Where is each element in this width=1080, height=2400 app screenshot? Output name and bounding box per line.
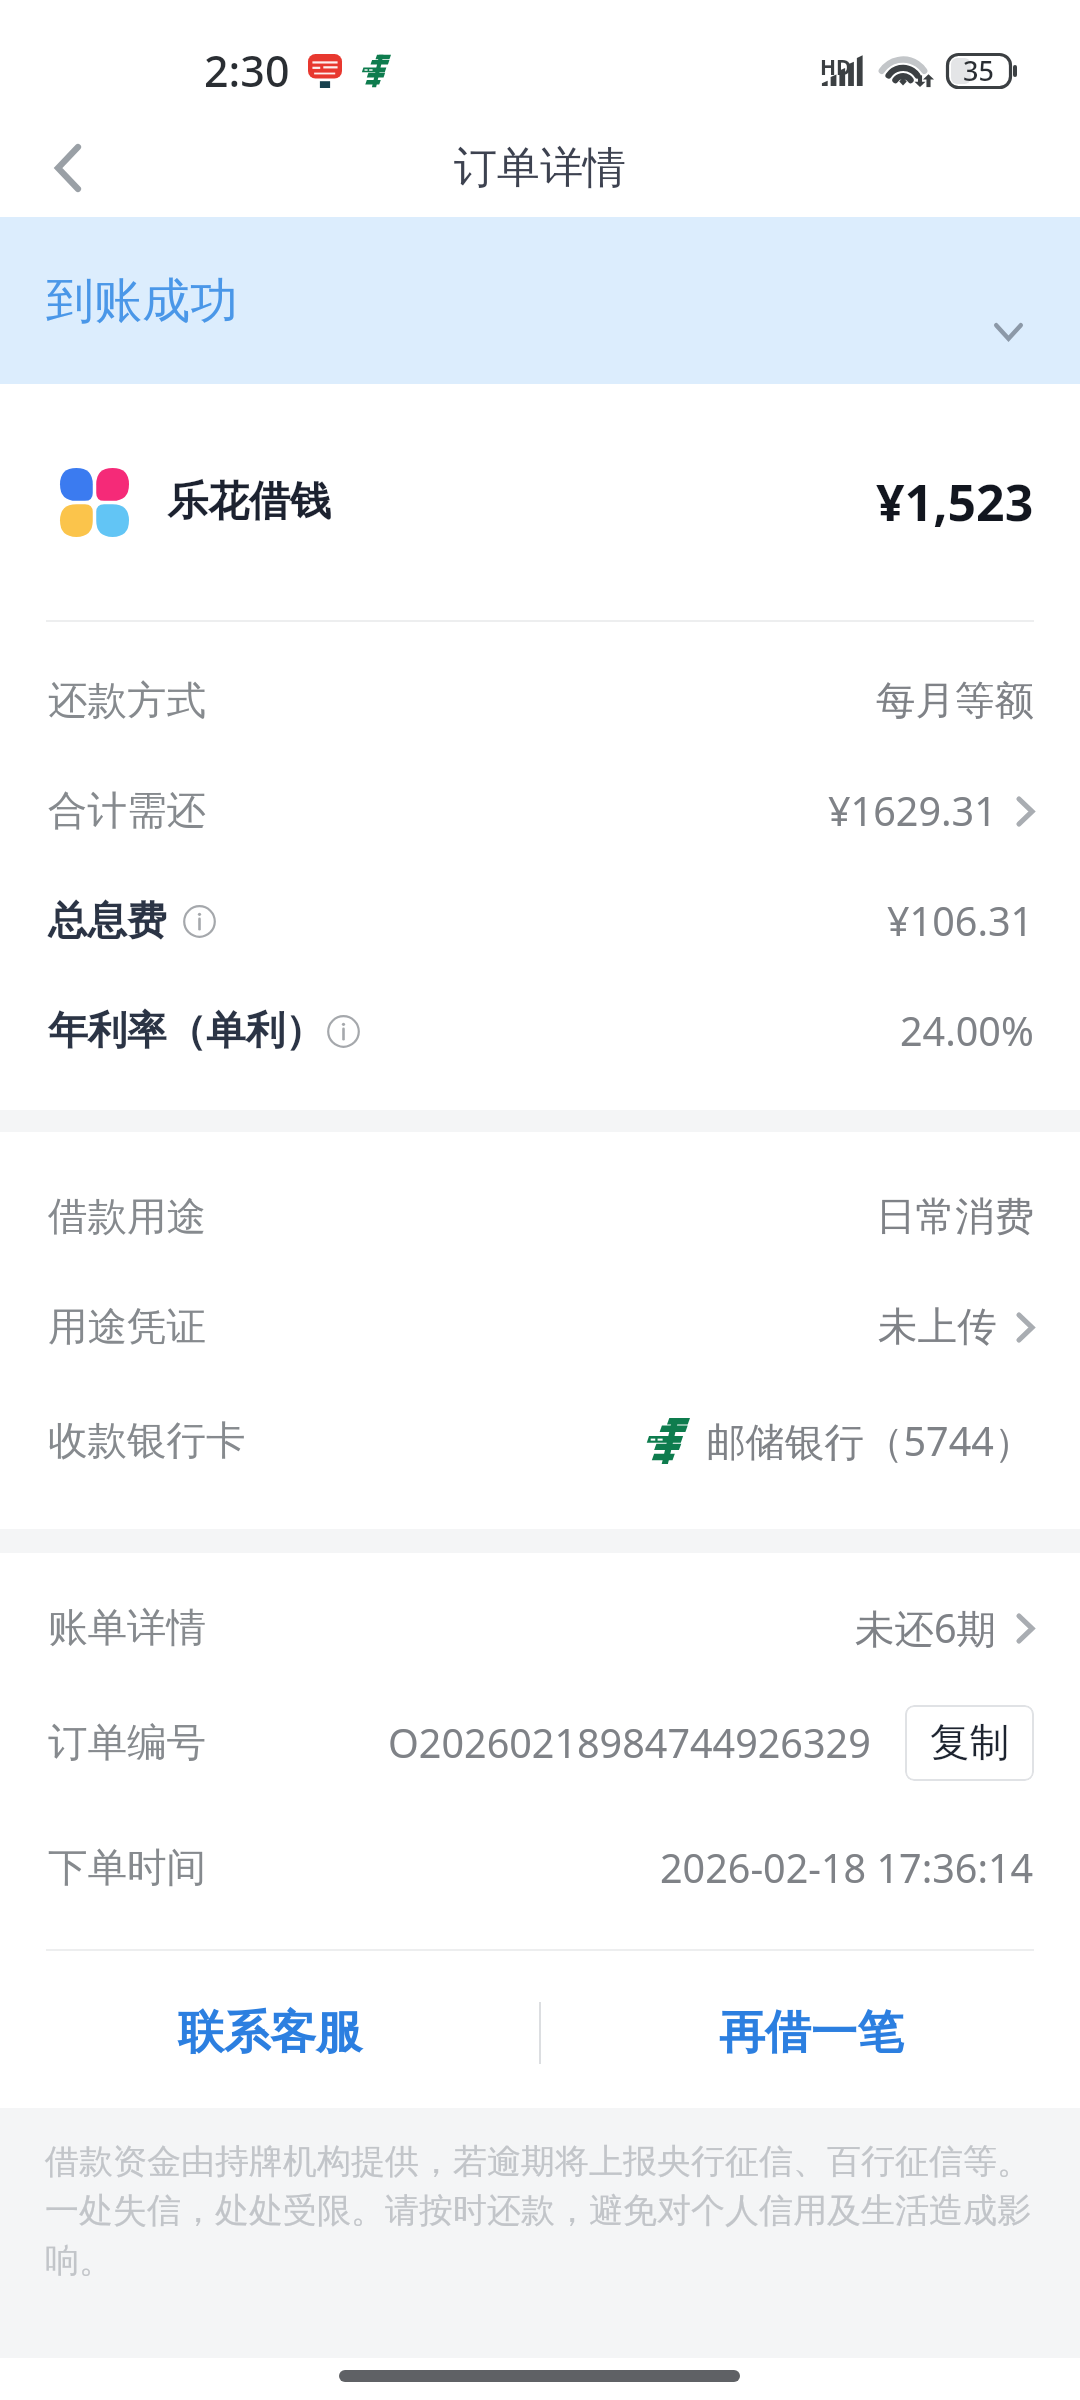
staticText: 借款用途: [48, 1192, 206, 1242]
button[interactable]: 联系客服: [0, 1954, 539, 2111]
staticText: 未上传: [878, 1302, 997, 1352]
staticText: 到账成功: [46, 271, 238, 331]
button[interactable]: 合计需还: [0, 756, 1080, 866]
staticText: 邮储银行（5744）: [706, 1414, 1034, 1468]
staticText: ¥106.31: [887, 894, 1034, 948]
button[interactable]: 到账成功: [0, 217, 1080, 384]
button[interactable]: 收款银行卡: [0, 1382, 1080, 1499]
staticText: 乐花借钱: [167, 476, 331, 528]
staticText: 还款方式: [48, 676, 206, 726]
staticText: 总息费: [48, 896, 167, 946]
staticText: 合计需还: [48, 786, 206, 836]
button[interactable]: 借款用途: [0, 1162, 1080, 1272]
staticText: 35: [963, 52, 994, 89]
button[interactable]: 年利率（单利）: [0, 976, 1080, 1086]
staticText: 联系客服: [178, 2004, 362, 2062]
staticText: 收款银行卡: [48, 1416, 246, 1466]
staticText: 日常消费: [876, 1192, 1034, 1242]
staticText: 未还6期: [855, 1601, 997, 1655]
button[interactable]: 总息费: [0, 866, 1080, 976]
staticText: 2026-02-18 17:36:14: [660, 1841, 1034, 1895]
button[interactable]: Back: [26, 126, 110, 210]
staticText: HD: [820, 53, 852, 82]
staticText: O20260218984744926329: [388, 1716, 871, 1770]
staticText: 用途凭证: [48, 1302, 206, 1352]
staticText: ¥1629.31: [828, 784, 997, 838]
staticText: 借款资金由持牌机构提供，若逾期将上报央行征信、百行征信等。一处失信，处处受限。请…: [45, 2140, 1038, 2282]
staticText: 每月等额: [876, 676, 1034, 726]
button[interactable]: 账单详情: [0, 1571, 1080, 1685]
button[interactable]: 还款方式: [0, 646, 1080, 756]
button[interactable]: 复制: [905, 1705, 1034, 1781]
staticText: 订单详情: [454, 141, 626, 195]
button[interactable]: 下单时间: [0, 1801, 1080, 1935]
staticText: 账单详情: [48, 1603, 206, 1653]
staticText: 年利率（单利）: [48, 1006, 325, 1056]
button[interactable]: 再借一笔: [541, 1954, 1080, 2111]
staticText: 复制: [930, 1718, 1009, 1768]
staticText: ¥1,523: [876, 468, 1034, 536]
staticText: 下单时间: [48, 1843, 206, 1893]
staticText: 2:30: [204, 41, 290, 100]
staticText: 订单编号: [48, 1718, 206, 1768]
button[interactable]: 用途凭证: [0, 1272, 1080, 1382]
staticText: 再借一笔: [719, 2004, 903, 2062]
staticText: 24.00%: [900, 1004, 1034, 1058]
